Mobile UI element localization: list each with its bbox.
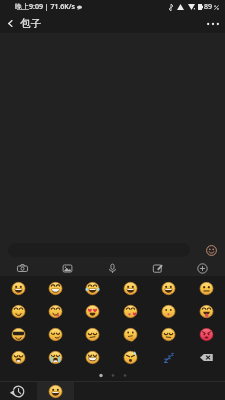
button[interactable]: Smileys <box>37 382 74 400</box>
button[interactable]: SMILE_OPEN <box>111 277 149 300</box>
button[interactable]: SLEEP <box>149 346 187 369</box>
button[interactable]: More <box>180 260 225 276</box>
button[interactable]: More options <box>201 14 225 33</box>
button[interactable]: Gallery <box>45 260 90 276</box>
button[interactable]: SAD_BROW <box>111 346 149 369</box>
button[interactable]: JOY <box>74 277 111 300</box>
button[interactable]: UNAMUSED <box>74 323 111 346</box>
button[interactable]: Edit <box>135 260 180 276</box>
button[interactable]: BACKSPACE <box>187 346 225 369</box>
button[interactable]: MASK <box>74 346 111 369</box>
staticText: 包子 <box>20 17 41 30</box>
button[interactable]: GRIN_SQUINT <box>37 277 74 300</box>
staticText: 晚上9:09 | 71.6K/s <box>15 2 75 12</box>
button[interactable]: SMIRK <box>37 323 74 346</box>
button[interactable]: ANGRY <box>187 323 225 346</box>
button[interactable]: PENSIVE <box>149 323 187 346</box>
button[interactable]: TONGUE <box>187 300 225 323</box>
button[interactable]: Camera <box>0 260 45 276</box>
button[interactable]: KISS_HEART <box>111 300 149 323</box>
button[interactable]: HEART_EYES <box>74 300 111 323</box>
button[interactable]: SUNGLASSES <box>0 323 37 346</box>
button[interactable]: SMILE <box>0 300 37 323</box>
button[interactable]: YUM <box>37 300 74 323</box>
button[interactable]: THINKING <box>111 323 149 346</box>
button[interactable]: GRIN <box>0 277 37 300</box>
button[interactable]: Recent <box>0 382 37 400</box>
button[interactable]: Voice message <box>90 260 135 276</box>
button[interactable]: KISSING <box>149 300 187 323</box>
button[interactable]: CRY_LOUD <box>37 346 74 369</box>
button[interactable]: Emoji <box>197 240 225 260</box>
button[interactable]: Back <box>0 14 20 33</box>
button[interactable]: GRIN_BIG <box>149 277 187 300</box>
button[interactable]: NEUTRAL <box>187 277 225 300</box>
staticText: 89 <box>204 2 213 12</box>
button[interactable]: WEARY <box>0 346 37 369</box>
